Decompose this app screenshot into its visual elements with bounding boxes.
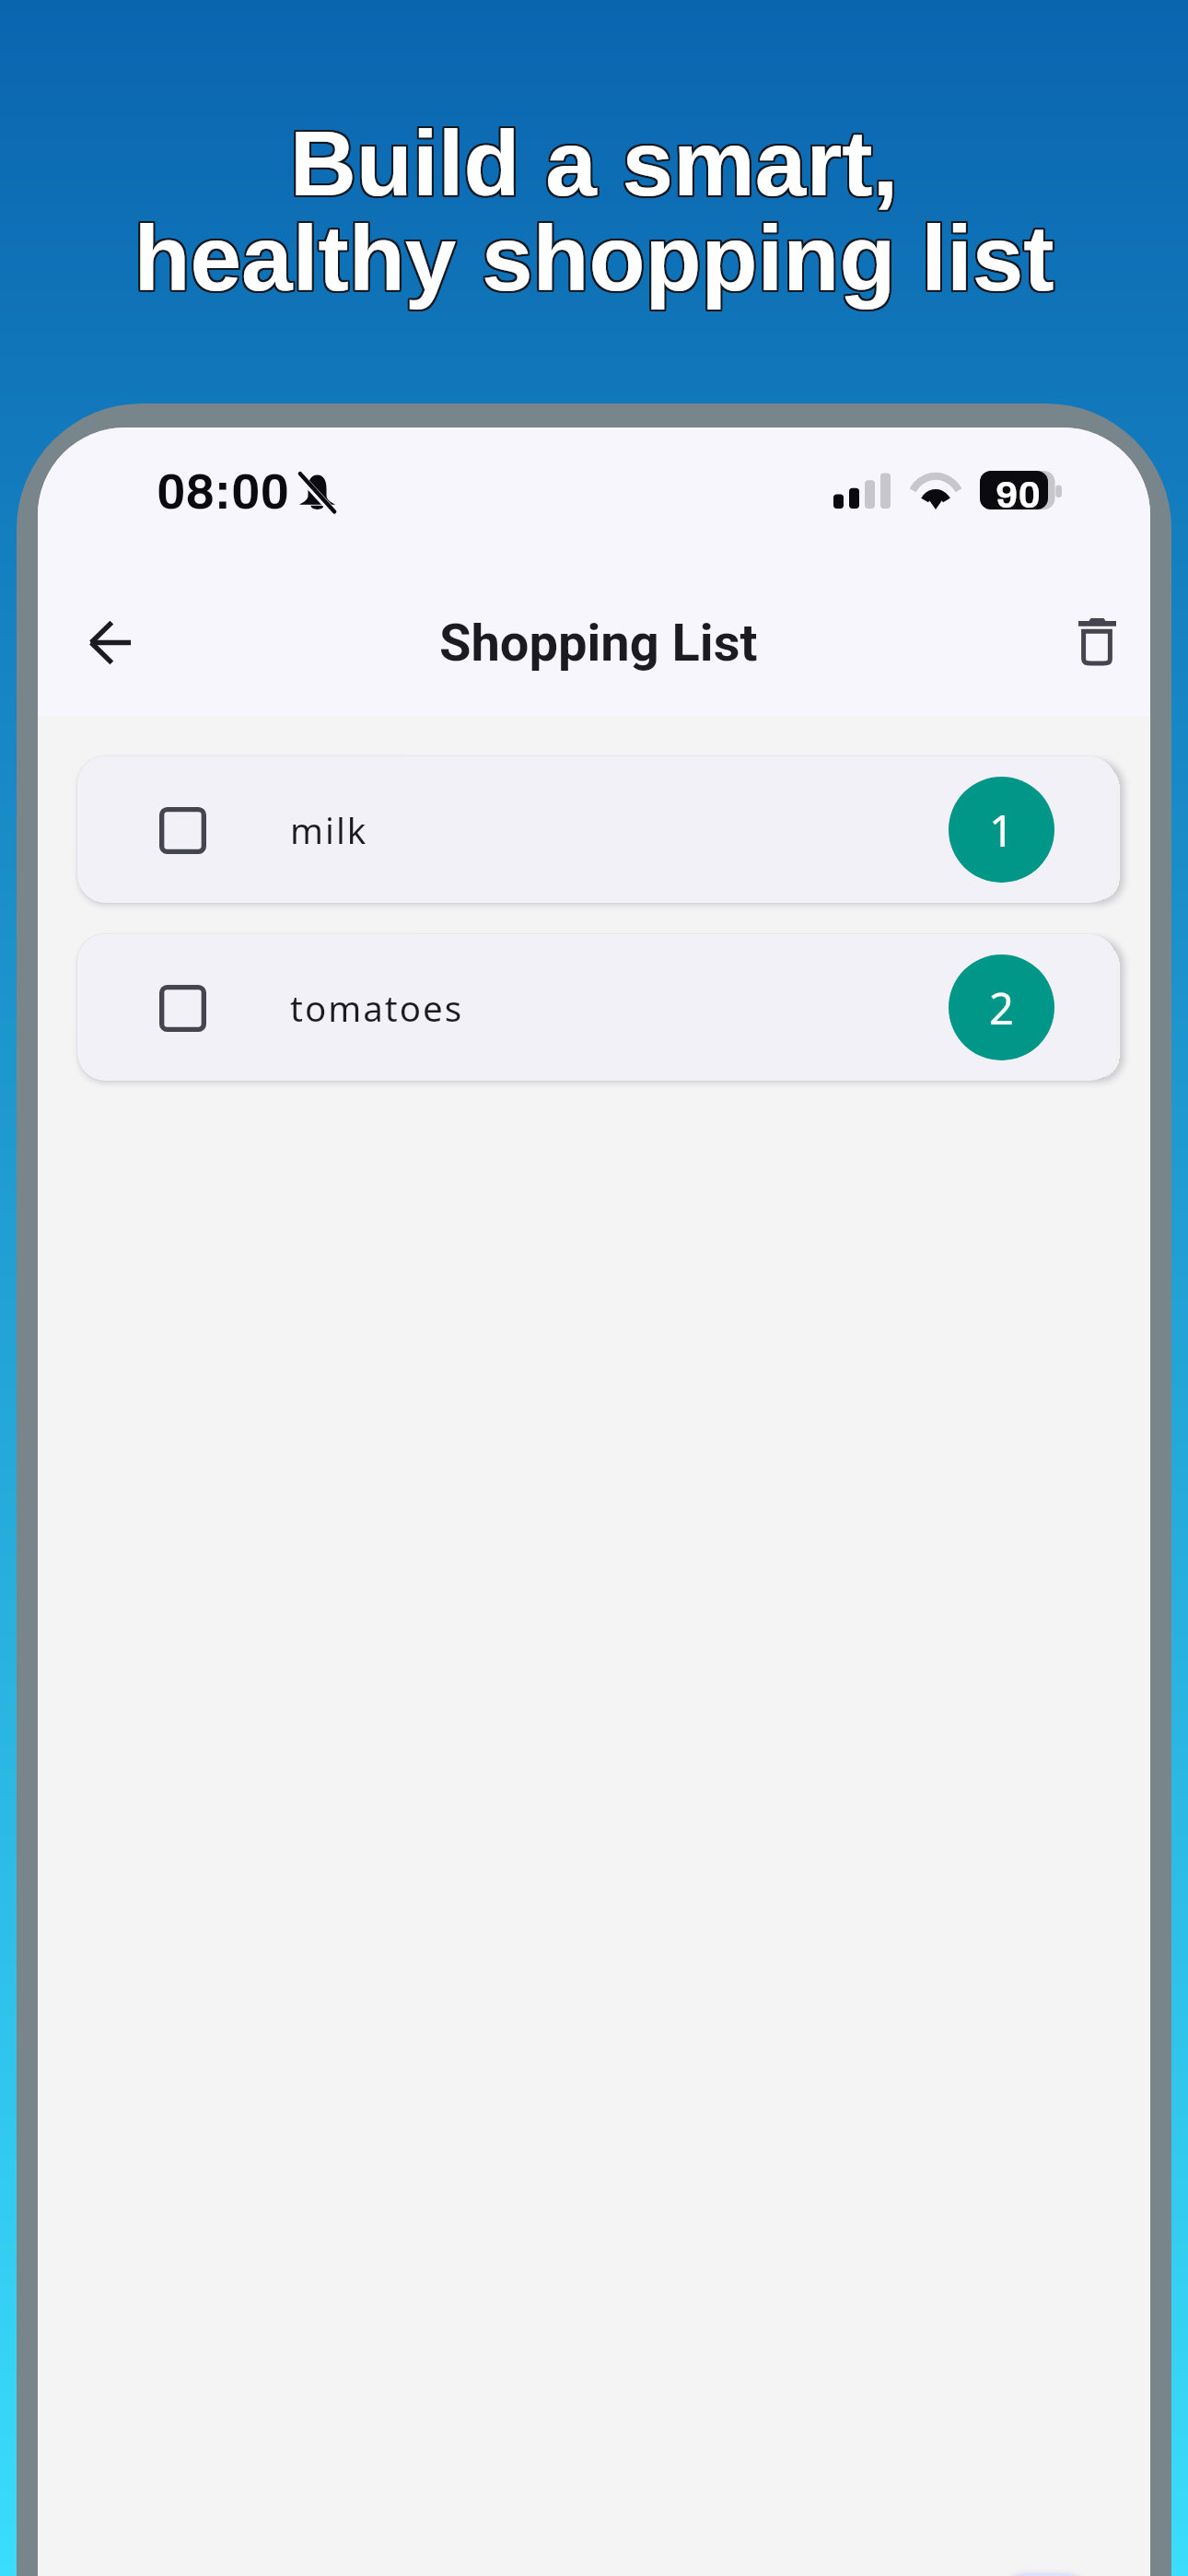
staticText: 1 <box>989 801 1014 860</box>
staticText: Build a smart, healthy shopping list <box>2 111 1188 309</box>
staticText: Build a smart, healthy shopping list <box>2 114 1188 311</box>
button[interactable]: Toggle tomatoes <box>77 934 1117 1081</box>
staticText: Build a smart, healthy shopping list <box>2 111 1188 308</box>
staticText: tomatoes <box>290 984 464 1032</box>
staticText: Build a smart, healthy shopping list <box>2 112 1188 310</box>
button[interactable]: Quantity 1 for milk <box>949 777 1054 883</box>
button[interactable]: Toggle tomatoes <box>136 962 228 1054</box>
staticText: Build a smart, healthy shopping list <box>0 113 1186 310</box>
button[interactable]: Delete list <box>1051 596 1143 688</box>
staticText: Build a smart, healthy shopping list <box>1 114 1188 311</box>
button[interactable]: Quantity 2 for tomatoes <box>949 954 1054 1060</box>
staticText: Build a smart, healthy shopping list <box>1 111 1188 308</box>
button[interactable]: Back <box>64 596 156 688</box>
staticText: Build a smart, healthy shopping list <box>0 112 1188 310</box>
button[interactable]: Toggle milk <box>77 756 1117 903</box>
staticText: Build a smart, healthy shopping list <box>2 113 1188 310</box>
staticText: Build a smart, healthy shopping list <box>0 111 1188 308</box>
staticText: Build a smart, healthy shopping list <box>0 111 1186 308</box>
button[interactable]: Toggle milk <box>136 784 228 876</box>
staticText: Build a smart, healthy shopping list <box>0 111 1186 309</box>
staticText: 90 <box>996 474 1041 513</box>
staticText: Build a smart, healthy shopping list <box>0 114 1186 311</box>
staticText: 08:00 <box>157 465 289 519</box>
staticText: Build a smart, healthy shopping list <box>0 114 1188 311</box>
staticText: Build a smart, healthy shopping list <box>0 111 1187 308</box>
staticText: Build a smart, healthy shopping list <box>0 112 1186 310</box>
staticText: 2 <box>989 978 1014 1037</box>
button[interactable]: Add item <box>1000 2573 1090 2576</box>
staticText: milk <box>290 806 368 854</box>
staticText: Shopping List <box>439 613 758 673</box>
staticText: Build a smart, healthy shopping list <box>0 114 1187 311</box>
